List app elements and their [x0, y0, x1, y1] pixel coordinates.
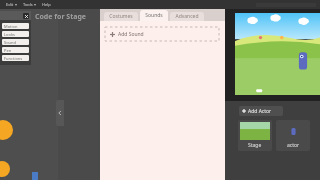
button[interactable]: Pen [2, 47, 29, 53]
button[interactable]: actor [276, 120, 310, 151]
button[interactable]: Help [39, 2, 54, 7]
staticText: Sounds [145, 12, 163, 19]
button[interactable]: Functions [2, 55, 29, 61]
button[interactable]: Tools [20, 2, 39, 7]
button[interactable]: Sounds [140, 10, 168, 21]
button[interactable]: Stage [238, 120, 272, 151]
button[interactable]: Advanced [170, 12, 204, 21]
staticText: Add Sound [118, 31, 144, 38]
staticText: Functions [4, 56, 23, 61]
button[interactable]: Looks [2, 31, 29, 37]
staticText: Code for Stage [35, 12, 87, 22]
staticText: actor [287, 142, 300, 149]
staticText: Stage [248, 142, 262, 149]
button[interactable]: Close [23, 13, 29, 19]
staticText: Add Actor [248, 108, 272, 115]
button[interactable]: Add Sound [105, 27, 219, 41]
staticText: Edit [6, 2, 14, 7]
staticText: Sound [4, 40, 17, 45]
button[interactable]: Costumes [104, 12, 138, 21]
button[interactable]: Edit [3, 2, 20, 7]
staticText: Tools [23, 2, 33, 7]
staticText: Motion [4, 24, 18, 29]
staticText: Costumes [109, 13, 133, 20]
button[interactable]: Motion [2, 23, 29, 29]
staticText: Pen [4, 48, 12, 53]
staticText: Looks [4, 32, 15, 37]
button[interactable]: Sound [2, 39, 29, 45]
staticText: Help [42, 2, 51, 7]
button[interactable]: Add Actor [239, 106, 283, 116]
button[interactable]: Collapse panel [56, 100, 64, 126]
staticText: Advanced [175, 13, 199, 20]
